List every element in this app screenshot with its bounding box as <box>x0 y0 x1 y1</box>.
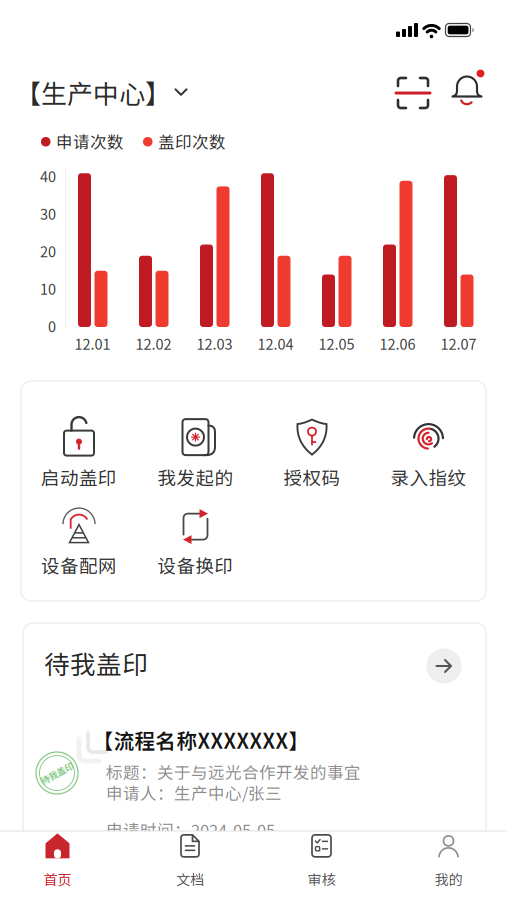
button[interactable]: 首页 <box>0 830 120 892</box>
staticText: 启动盖印 <box>41 464 117 490</box>
button[interactable]: 录入指纹 <box>390 415 466 490</box>
button[interactable]: 【流程名称XXXXXXX】 <box>85 710 486 840</box>
staticText: 待我盖印 <box>39 766 75 779</box>
staticText: 待我盖印 <box>44 644 148 681</box>
staticText: 设备配网 <box>41 552 117 578</box>
staticText: 我发起的 <box>157 464 233 490</box>
staticText: 申请人：生产中心/张三 <box>106 780 282 804</box>
staticText: 12.03 <box>196 333 232 354</box>
staticText: 设备换印 <box>157 552 233 578</box>
button[interactable]: 审核 <box>258 830 384 892</box>
staticText: 录入指纹 <box>390 464 466 490</box>
staticText: 【生产中心】 <box>15 73 171 111</box>
staticText: 标题：关于与远光合作开发的事宜 <box>106 759 361 783</box>
staticText: 【流程名称XXXXXXX】 <box>92 725 309 755</box>
staticText: 12.02 <box>135 333 171 354</box>
staticText: 12.06 <box>379 333 415 354</box>
button[interactable]: 文档 <box>127 830 253 892</box>
button[interactable]: 设备配网 <box>41 503 117 578</box>
staticText: 12.07 <box>440 333 476 354</box>
staticText: 审核 <box>307 869 335 889</box>
button[interactable]: 我的 <box>385 830 507 892</box>
button[interactable]: 【生产中心】 <box>15 73 188 111</box>
staticText: 盖印次数 <box>158 129 226 153</box>
button[interactable]: 查看全部 <box>426 648 461 683</box>
button[interactable]: 授权码 <box>283 415 340 490</box>
staticText: 首页 <box>43 869 71 889</box>
staticText: 文档 <box>176 869 204 889</box>
button[interactable]: 设备换印 <box>157 503 233 578</box>
button[interactable]: 我发起的 <box>157 415 233 490</box>
staticText: 0 <box>48 315 56 336</box>
button[interactable]: 扫一扫 <box>395 75 431 111</box>
staticText: 12.01 <box>74 333 110 354</box>
staticText: 40 <box>40 165 56 186</box>
staticText: 30 <box>40 203 56 224</box>
staticText: 12.04 <box>257 333 293 354</box>
staticText: 12.05 <box>318 333 354 354</box>
button[interactable]: 启动盖印 <box>41 415 117 490</box>
staticText: 授权码 <box>283 464 340 490</box>
button[interactable]: 消息通知 <box>448 69 488 109</box>
staticText: 我的 <box>434 869 462 889</box>
staticText: 申请时间：2024-05-05 <box>106 817 275 841</box>
staticText: 10 <box>40 278 56 299</box>
staticText: 申请次数 <box>56 129 124 153</box>
staticText: 20 <box>40 240 56 261</box>
